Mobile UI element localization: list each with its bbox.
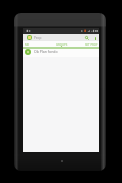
staticText: GROUPS bbox=[56, 43, 68, 47]
button[interactable]: SET PROF bbox=[85, 43, 98, 47]
button[interactable]: ME bbox=[25, 43, 30, 47]
staticText: Ob Plan fondo bbox=[34, 49, 58, 54]
staticText: SET PROF bbox=[85, 43, 98, 47]
button[interactable]: More options bbox=[92, 34, 98, 42]
button[interactable]: Account bbox=[27, 35, 32, 40]
staticText: ME bbox=[25, 43, 30, 47]
staticText: Peop bbox=[34, 36, 42, 40]
button[interactable]: GROUPS bbox=[56, 43, 68, 47]
button[interactable]: Ob Plan fondo bbox=[23, 49, 99, 57]
button[interactable]: Search bbox=[83, 34, 90, 42]
